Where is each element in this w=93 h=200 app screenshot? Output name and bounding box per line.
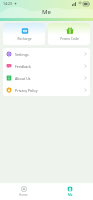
staticText: Me [42,8,51,16]
button[interactable]: Privacy Policy [3,84,90,96]
button[interactable]: Recharge [3,23,45,45]
staticText: Privacy Policy [15,88,38,93]
button[interactable]: Feedback [3,60,90,72]
staticText: Home [19,193,28,197]
staticText: Promo Code [60,37,79,41]
staticText: About Us [15,76,31,81]
button[interactable]: About Us [3,72,90,84]
staticText: Feedback [15,64,31,69]
button[interactable]: Settings [3,48,90,60]
button[interactable]: Promo Code [48,23,90,45]
staticText: Me [68,193,73,197]
button[interactable]: Me [46,183,93,200]
button[interactable]: Home [0,183,46,200]
staticText: Settings [15,52,29,57]
staticText: Recharge [17,37,32,41]
staticText: 14:23 [3,1,12,6]
